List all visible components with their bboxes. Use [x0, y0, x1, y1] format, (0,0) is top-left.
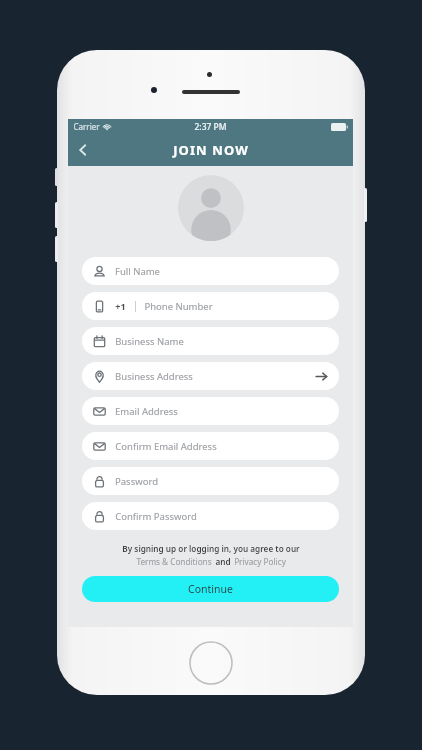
staticText: Email Address [115, 405, 178, 418]
staticText: Terms & Conditions [136, 556, 212, 567]
staticText: Privacy Policy [234, 556, 286, 567]
button[interactable]: Full Name [82, 257, 339, 285]
staticText: 2:37 PM [194, 121, 227, 133]
button[interactable]: Confirm Password [82, 502, 339, 530]
staticText: Confirm Email Address [115, 440, 217, 453]
staticText: Phone Number [144, 300, 213, 313]
button[interactable]: Password [82, 467, 339, 495]
staticText: Confirm Password [115, 510, 197, 523]
button[interactable]: Terms & Conditions [136, 556, 212, 567]
button[interactable]: Confirm Email Address [82, 432, 339, 460]
staticText: Continue [188, 582, 233, 596]
button[interactable]: Email Address [82, 397, 339, 425]
button[interactable]: Continue [82, 576, 339, 602]
staticText: Carrier [73, 121, 100, 132]
staticText: By signing up or logging in, you agree t… [122, 543, 300, 554]
staticText: JOIN NOW [173, 141, 249, 159]
button[interactable]: Business Address [82, 362, 339, 390]
staticText: Business Address [115, 370, 193, 383]
button[interactable]: +1 [82, 292, 339, 320]
button[interactable]: Privacy Policy [234, 556, 286, 567]
staticText: +1 [115, 300, 126, 312]
button[interactable]: Business Name [82, 327, 339, 355]
button[interactable]: Back [68, 135, 98, 165]
staticText: Password [115, 475, 158, 488]
staticText: Business Name [115, 335, 184, 348]
staticText: Full Name [115, 265, 160, 278]
staticText: and [215, 556, 231, 567]
